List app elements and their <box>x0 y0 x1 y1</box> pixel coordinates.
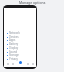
button[interactable]: Privacy <box>4 57 36 61</box>
button[interactable]: Apps <box>4 38 36 42</box>
button[interactable]: Devices <box>4 35 36 39</box>
staticText: Network <box>9 31 20 35</box>
button[interactable]: Network <box>4 31 36 35</box>
button[interactable]: Storage <box>4 53 36 57</box>
button[interactable]: Display <box>4 46 36 50</box>
staticText: Manage options <box>19 0 46 5</box>
staticText: Apps <box>9 38 16 42</box>
staticText: Display <box>9 46 19 50</box>
staticText: Battery <box>9 42 19 46</box>
button[interactable]: Add <box>19 61 22 64</box>
button[interactable]: Battery <box>4 42 36 46</box>
staticText: Storage <box>9 53 19 57</box>
button[interactable]: Sound <box>4 50 36 54</box>
staticText: Privacy <box>9 57 18 61</box>
staticText: Sound <box>9 50 18 54</box>
staticText: Devices <box>9 35 19 39</box>
